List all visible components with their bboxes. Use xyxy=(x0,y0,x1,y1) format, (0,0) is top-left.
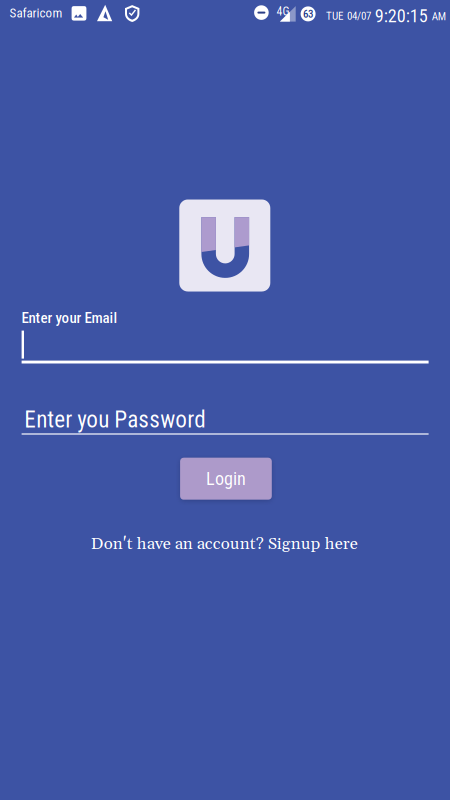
staticText: AM xyxy=(432,10,446,23)
button[interactable]: Login xyxy=(180,458,272,500)
staticText: 4G xyxy=(276,4,289,18)
staticText: 9:20:15 xyxy=(375,5,428,27)
button[interactable]: Don't have an account? Signup here xyxy=(91,534,358,555)
staticText: 63 xyxy=(303,7,313,20)
staticText: Don't have an account? Signup here xyxy=(91,534,358,555)
staticText: TUE 04/07 xyxy=(326,9,371,22)
staticText: Enter you Password xyxy=(24,406,206,433)
staticText: Safaricom xyxy=(10,5,63,21)
staticText: Enter your Email xyxy=(22,309,118,327)
staticText: Login xyxy=(206,468,246,489)
